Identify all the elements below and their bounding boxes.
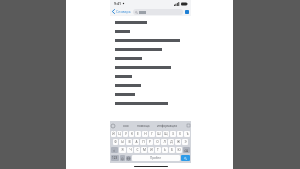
button[interactable]: Ш: [156, 131, 162, 137]
button[interactable]: [110, 90, 191, 99]
button[interactable]: Э: [182, 139, 188, 145]
staticText: Ш: [157, 132, 161, 136]
button[interactable]: У: [123, 131, 128, 137]
button[interactable]: Globe: [126, 156, 131, 161]
button[interactable]: Microphone: [185, 10, 189, 14]
button[interactable]: Словарь: [110, 7, 133, 16]
staticText: информация: [157, 124, 178, 128]
staticText: Ы: [121, 140, 124, 144]
button[interactable]: Ч: [127, 147, 133, 153]
button[interactable]: З: [170, 131, 176, 137]
staticText: М: [143, 148, 146, 152]
button[interactable]: Ъ: [184, 131, 190, 137]
staticText: Щ: [164, 132, 168, 136]
button[interactable]: М: [141, 147, 147, 153]
button[interactable]: Х: [177, 131, 183, 137]
button[interactable]: Г: [149, 131, 155, 137]
button[interactable]: Numbers: [111, 155, 119, 161]
button[interactable]: Emoji: [110, 123, 115, 128]
staticText: Ь: [164, 148, 166, 152]
staticText: помощь: [137, 124, 150, 128]
button[interactable]: [110, 36, 191, 45]
staticText: Ж: [177, 140, 180, 144]
staticText: Э: [184, 140, 187, 144]
staticText: 123: [112, 156, 118, 160]
staticText: Ц: [118, 132, 121, 136]
button[interactable]: А: [133, 139, 139, 145]
staticText: Б: [171, 148, 173, 152]
button[interactable]: [110, 18, 191, 27]
button[interactable]: Б: [169, 147, 175, 153]
button[interactable]: [110, 99, 191, 108]
button[interactable]: Л: [161, 139, 167, 145]
staticText: Ф: [114, 140, 117, 144]
button[interactable]: Ь: [162, 147, 168, 153]
staticText: Ъ: [186, 132, 189, 136]
button[interactable]: Т: [155, 147, 161, 153]
button[interactable]: Keyboard settings: [186, 123, 191, 128]
button[interactable]: Ц: [117, 131, 122, 137]
button[interactable]: Ю: [176, 147, 182, 153]
button[interactable]: Д: [168, 139, 174, 145]
button[interactable]: [110, 45, 191, 54]
staticText: Д: [170, 140, 173, 144]
staticText: В: [128, 140, 131, 144]
button[interactable]: [110, 72, 191, 81]
staticText: Я: [121, 148, 124, 152]
button[interactable]: Shift: [111, 147, 118, 153]
button[interactable]: [110, 54, 191, 63]
button[interactable]: Ф: [113, 139, 118, 145]
button[interactable]: [110, 81, 191, 90]
button[interactable]: Ы: [119, 139, 125, 145]
staticText: ⇧: [113, 149, 116, 152]
staticText: Х: [179, 132, 181, 136]
button[interactable]: Emoji: [120, 155, 125, 161]
staticText: Ю: [177, 148, 181, 152]
button[interactable]: [110, 63, 191, 72]
staticText: Пробел: [150, 156, 162, 160]
staticText: Н: [144, 132, 147, 136]
staticText: Ч: [129, 148, 132, 152]
button[interactable]: [110, 27, 191, 36]
button[interactable]: [133, 9, 183, 15]
staticText: Е: [137, 132, 139, 136]
button[interactable]: Ж: [175, 139, 181, 145]
staticText: И: [150, 148, 153, 152]
button[interactable]: Я: [119, 147, 126, 153]
button[interactable]: Р: [147, 139, 153, 145]
staticText: 9:41: [114, 1, 121, 6]
button[interactable]: Н: [142, 131, 148, 137]
button[interactable]: Search: [181, 155, 190, 161]
button[interactable]: Пробел: [132, 155, 180, 161]
button[interactable]: Backspace: [183, 147, 190, 153]
button[interactable]: О: [154, 139, 160, 145]
staticText: Й: [112, 132, 115, 136]
staticText: Т: [157, 148, 159, 152]
staticText: Р: [149, 140, 151, 144]
button[interactable]: В: [126, 139, 132, 145]
button[interactable]: К: [129, 131, 134, 137]
button[interactable]: С: [134, 147, 140, 153]
staticText: З: [172, 132, 174, 136]
staticText: ☺: [121, 157, 125, 160]
staticText: Г: [151, 132, 153, 136]
staticText: П: [142, 140, 145, 144]
staticText: С: [136, 148, 139, 152]
button[interactable]: Е: [135, 131, 141, 137]
staticText: О: [156, 140, 159, 144]
button[interactable]: И: [148, 147, 154, 153]
staticText: А: [135, 140, 138, 144]
staticText: У: [125, 132, 127, 136]
button[interactable]: П: [140, 139, 146, 145]
staticText: Л: [163, 140, 166, 144]
staticText: Словарь: [116, 9, 131, 14]
staticText: ооо: [123, 124, 129, 128]
staticText: К: [131, 132, 133, 136]
button[interactable]: Й: [111, 131, 116, 137]
button[interactable]: Щ: [163, 131, 169, 137]
staticText: ⌫: [184, 149, 189, 152]
